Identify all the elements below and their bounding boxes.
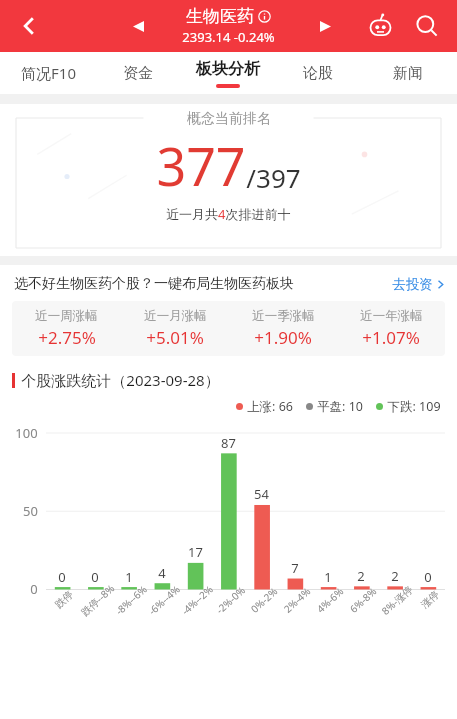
staticText: 54 <box>254 485 269 503</box>
button[interactable]: Next sector <box>309 10 341 42</box>
staticText: 上涨: 66 <box>247 398 293 415</box>
button[interactable]: Search <box>405 4 449 48</box>
staticText: -2%-0% <box>213 583 248 617</box>
staticText: 个股涨跌统计（2023-09-28） <box>21 370 220 390</box>
staticText: 新闻 <box>393 64 423 83</box>
staticText: 87 <box>221 434 236 452</box>
staticText: 7 <box>291 559 299 577</box>
staticText: 0 <box>424 568 432 586</box>
staticText: 下跌: 109 <box>387 398 441 415</box>
staticText: 近一年涨幅 <box>360 308 423 324</box>
button[interactable]: 论股 <box>273 52 363 94</box>
staticText: 选不好生物医药个股？一键布局生物医药板块 <box>14 275 294 293</box>
staticText: 6%-8% <box>346 584 379 616</box>
button[interactable]: Previous sector <box>122 10 154 42</box>
staticText: 0 <box>91 568 99 586</box>
staticText: 近一月共4次排进前十 <box>166 205 291 223</box>
staticText: +5.01% <box>146 326 204 349</box>
staticText: 涨停 <box>418 588 442 611</box>
staticText: 2%-4% <box>280 584 313 616</box>
staticText: 生物医药 <box>186 6 254 27</box>
button[interactable]: Back <box>0 0 58 52</box>
staticText: 4%-6% <box>313 584 346 616</box>
staticText: 概念当前排名 <box>187 110 271 128</box>
staticText: 近一季涨幅 <box>252 308 315 324</box>
staticText: 0%-2% <box>247 584 280 616</box>
staticText: +1.07% <box>362 326 420 349</box>
staticText: 1 <box>125 568 133 586</box>
staticText: 2 <box>391 567 399 585</box>
button[interactable]: 生物医药 <box>182 6 275 46</box>
staticText: 4 <box>158 564 166 582</box>
staticText: 377 <box>156 130 246 201</box>
staticText: -8%--6% <box>112 582 150 618</box>
staticText: 平盘: 10 <box>317 398 363 415</box>
staticText: 跌停--8% <box>78 581 117 619</box>
staticText: 0 <box>58 568 66 586</box>
staticText: 8%-涨停 <box>378 582 416 618</box>
staticText: 跌停 <box>52 588 76 611</box>
staticText: +1.90% <box>254 326 312 349</box>
staticText: 近一周涨幅 <box>35 308 98 324</box>
button[interactable]: 简况F10 <box>4 52 93 94</box>
button[interactable]: 板块分析 <box>183 52 273 94</box>
staticText: 100 <box>15 424 38 442</box>
staticText: 简况F10 <box>21 63 76 83</box>
staticText: +2.75% <box>38 326 96 349</box>
staticText: 论股 <box>303 64 333 83</box>
staticText: 板块分析 <box>196 59 260 79</box>
staticText: 0 <box>30 580 38 598</box>
staticText: 2393.14 -0.24% <box>182 28 275 46</box>
staticText: 17 <box>188 543 203 561</box>
staticText: 资金 <box>123 64 153 83</box>
staticText: 1 <box>324 568 332 586</box>
button[interactable]: AI assistant <box>359 5 401 47</box>
staticText: 近一月涨幅 <box>144 308 207 324</box>
staticText: 50 <box>23 502 38 520</box>
staticText: -4%--2% <box>178 582 216 618</box>
staticText: -6%--4% <box>145 582 183 618</box>
staticText: /397 <box>246 160 301 195</box>
button[interactable]: 选不好生物医药个股？一键布局生物医药板块 <box>0 265 457 301</box>
button[interactable]: 资金 <box>93 52 183 94</box>
staticText: 去投资 <box>392 276 433 293</box>
button[interactable]: 新闻 <box>363 52 453 94</box>
staticText: 2 <box>357 567 365 585</box>
